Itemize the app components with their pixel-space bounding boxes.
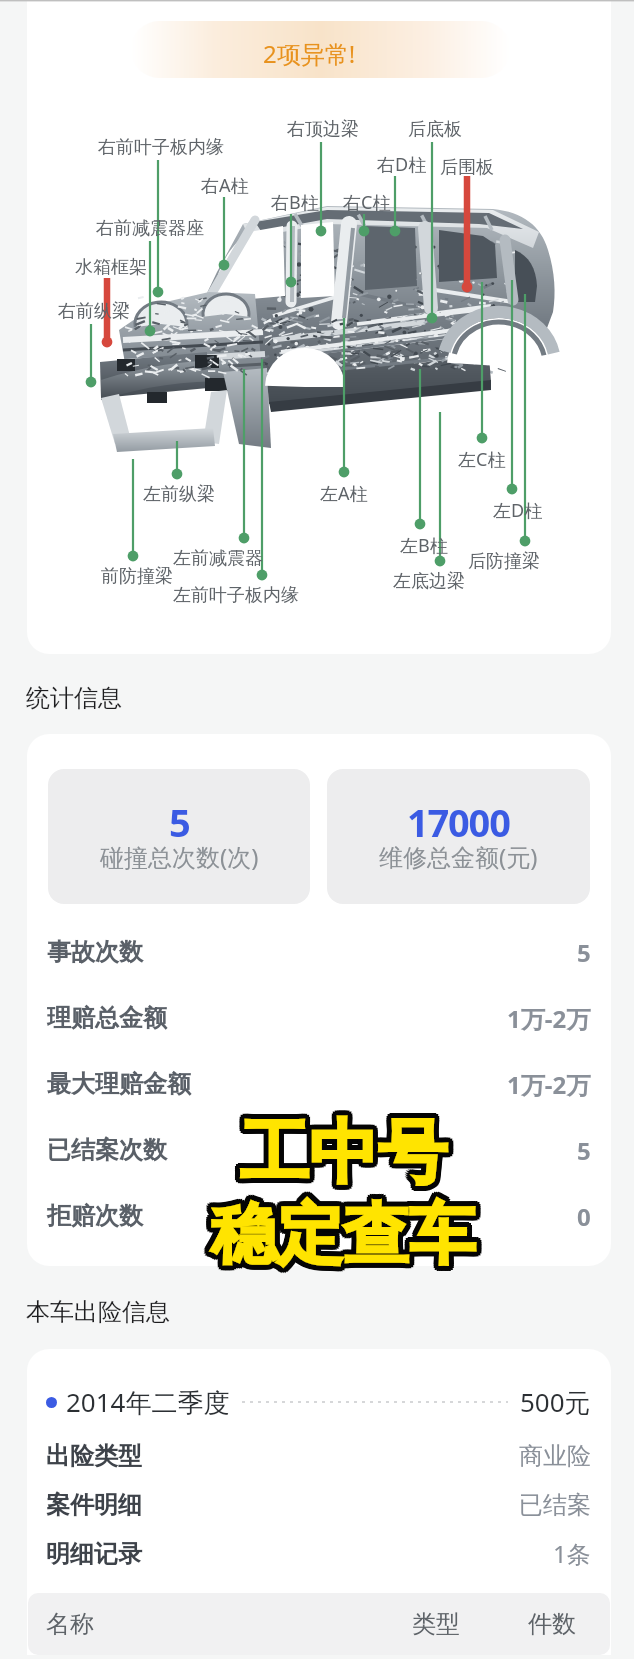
staticText: 本车出险信息 xyxy=(26,1297,170,1327)
staticText: 5 xyxy=(577,936,591,969)
staticText: 2项异常! xyxy=(263,37,356,70)
staticText: 统计信息 xyxy=(26,683,122,713)
button[interactable]: 拒赔次数 xyxy=(47,1183,591,1249)
button[interactable]: 事故次数 xyxy=(47,919,591,985)
staticText: 已结案 xyxy=(519,1490,591,1520)
button[interactable]: 案件明细 xyxy=(46,1480,591,1529)
staticText: 1条 xyxy=(553,1537,591,1570)
staticText: 工中号 xyxy=(245,1112,452,1199)
staticText: 商业险 xyxy=(519,1441,591,1471)
staticText: 稳定查车 xyxy=(215,1189,479,1272)
staticText: 工中号 xyxy=(238,1115,445,1202)
staticText: 出险类型 xyxy=(46,1441,142,1471)
staticText: 稳定查车 xyxy=(206,1195,470,1278)
staticText: 稳定查车 xyxy=(213,1188,477,1271)
staticText: 类型 xyxy=(412,1609,528,1639)
staticText: 事故次数 xyxy=(47,937,143,967)
staticText: 稳定查车 xyxy=(211,1188,475,1271)
staticText: 最大理赔金额 xyxy=(47,1069,191,1099)
staticText: 右B柱 xyxy=(271,190,319,215)
staticText: 维修总金额(元) xyxy=(379,840,538,873)
staticText: 右A柱 xyxy=(201,173,249,198)
staticText: 稳定查车 xyxy=(213,1198,477,1281)
staticText: 1万-2万 xyxy=(507,1002,591,1035)
staticText: 工中号 xyxy=(235,1112,442,1199)
staticText: 碰撞总次数(次) xyxy=(100,840,259,873)
button[interactable]: 出险类型 xyxy=(46,1431,591,1480)
staticText: 右C柱 xyxy=(343,190,391,215)
button[interactable]: 已结案次数 xyxy=(47,1117,591,1183)
staticText: 5 xyxy=(577,1134,591,1167)
staticText: 稳定查车 xyxy=(211,1198,475,1281)
staticText: 稳定查车 xyxy=(209,1198,473,1281)
staticText: 案件明细 xyxy=(46,1490,142,1520)
button[interactable]: 5 xyxy=(48,769,310,904)
staticText: 右前减震器座 xyxy=(96,217,204,240)
staticText: 工中号 xyxy=(244,1106,451,1193)
staticText: 稳定查车 xyxy=(216,1195,480,1278)
staticText: 工中号 xyxy=(238,1105,445,1192)
staticText: 工中号 xyxy=(236,1106,443,1193)
staticText: 左D柱 xyxy=(493,498,543,523)
button[interactable]: 最大理赔金额 xyxy=(47,1051,591,1117)
staticText: 0 xyxy=(577,1200,591,1233)
button[interactable]: 理赔总金额 xyxy=(47,985,591,1051)
button[interactable]: 17000 xyxy=(327,769,590,904)
staticText: 稳定查车 xyxy=(206,1193,470,1276)
staticText: 右前纵梁 xyxy=(58,300,130,323)
staticText: 工中号 xyxy=(235,1108,442,1195)
staticText: 稳定查车 xyxy=(209,1188,473,1271)
staticText: 右D柱 xyxy=(377,152,427,177)
staticText: 左前叶子板内缘 xyxy=(173,584,299,607)
staticText: 后防撞梁 xyxy=(468,550,540,573)
staticText: 左前纵梁 xyxy=(143,483,215,506)
staticText: 工中号 xyxy=(240,1110,447,1197)
staticText: 稳定查车 xyxy=(216,1193,480,1276)
staticText: 500元 xyxy=(520,1384,591,1420)
staticText: 工中号 xyxy=(235,1110,442,1197)
staticText: 工中号 xyxy=(240,1105,447,1192)
staticText: 水箱框架 xyxy=(75,256,147,279)
staticText: 工中号 xyxy=(245,1108,452,1195)
staticText: 左前减震器 xyxy=(173,547,263,570)
staticText: 5 xyxy=(169,796,190,848)
staticText: 1万-2万 xyxy=(507,1068,591,1101)
staticText: 已结案次数 xyxy=(47,1135,167,1165)
staticText: 前防撞梁 xyxy=(101,565,173,588)
staticText: 17000 xyxy=(407,796,510,848)
button[interactable]: 名称 xyxy=(28,1593,610,1655)
staticText: 后底板 xyxy=(408,118,462,141)
staticText: 件数 xyxy=(528,1609,610,1639)
button[interactable]: 明细记录 xyxy=(46,1529,591,1578)
staticText: 工中号 xyxy=(242,1115,449,1202)
staticText: 左C柱 xyxy=(458,447,506,472)
staticText: 左A柱 xyxy=(320,481,368,506)
staticText: 稳定查车 xyxy=(216,1191,480,1274)
staticText: 稳定查车 xyxy=(215,1197,479,1280)
staticText: 2014年二季度 xyxy=(66,1384,230,1420)
staticText: 左底边梁 xyxy=(393,570,465,593)
staticText: 后围板 xyxy=(440,156,494,179)
staticText: 名称 xyxy=(46,1609,412,1639)
staticText: 理赔总金额 xyxy=(47,1003,167,1033)
staticText: 工中号 xyxy=(245,1110,452,1197)
staticText: 工中号 xyxy=(236,1114,443,1201)
staticText: 右前叶子板内缘 xyxy=(98,136,224,159)
staticText: 拒赔次数 xyxy=(47,1201,143,1231)
staticText: 稳定查车 xyxy=(211,1193,475,1276)
staticText: 稳定查车 xyxy=(207,1197,471,1280)
staticText: 明细记录 xyxy=(46,1539,142,1569)
staticText: 左B柱 xyxy=(400,533,448,558)
button[interactable]: 2014年二季度 xyxy=(46,1373,591,1431)
staticText: 工中号 xyxy=(242,1105,449,1192)
staticText: 工中号 xyxy=(244,1114,451,1201)
staticText: 稳定查车 xyxy=(207,1189,471,1272)
staticText: 右顶边梁 xyxy=(287,118,359,141)
staticText: 工中号 xyxy=(240,1115,447,1202)
staticText: 稳定查车 xyxy=(206,1191,470,1274)
